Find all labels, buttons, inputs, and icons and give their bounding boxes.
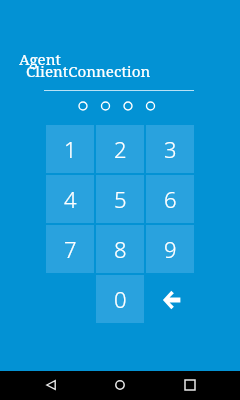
- button[interactable]: 2: [96, 125, 144, 173]
- staticText: 3: [164, 134, 177, 164]
- staticText: 0: [114, 284, 127, 314]
- button[interactable]: 5: [96, 175, 144, 223]
- button[interactable]: 3: [146, 125, 194, 173]
- button[interactable]: Recent apps: [175, 370, 204, 399]
- button[interactable]: Home: [105, 370, 134, 399]
- button[interactable]: 7: [46, 225, 94, 273]
- button[interactable]: 9: [146, 225, 194, 273]
- button[interactable]: 0: [96, 275, 144, 323]
- staticText: 1: [64, 134, 77, 164]
- staticText: 2: [114, 134, 127, 164]
- button[interactable]: 8: [96, 225, 144, 273]
- staticText: 8: [114, 234, 127, 264]
- button[interactable]: 1: [46, 125, 94, 173]
- button[interactable]: 6: [146, 175, 194, 223]
- staticText: 7: [64, 234, 77, 264]
- staticText: Agent: [19, 49, 61, 70]
- button[interactable]: 4: [46, 175, 94, 223]
- staticText: 9: [164, 234, 177, 264]
- staticText: ClientConnection: [26, 61, 151, 82]
- staticText: 6: [164, 184, 177, 214]
- staticText: 5: [114, 184, 127, 214]
- button[interactable]: Back: [36, 370, 65, 399]
- staticText: 4: [64, 184, 77, 214]
- button[interactable]: Backspace: [146, 275, 194, 323]
